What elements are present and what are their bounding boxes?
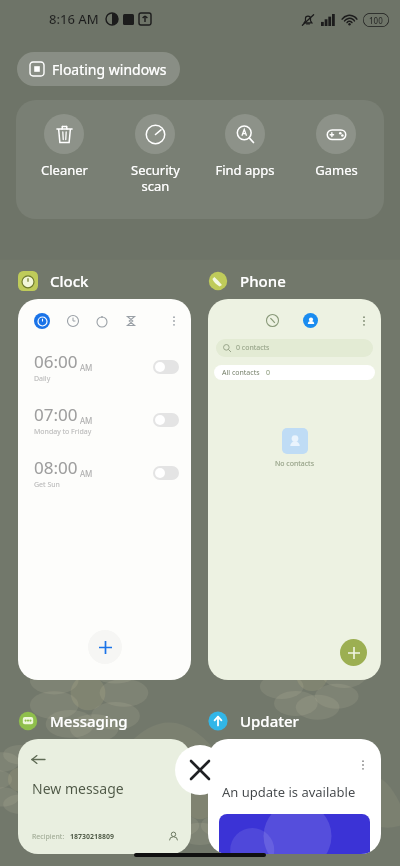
staticText: Daily xyxy=(34,374,51,384)
button[interactable]: Alarm toggle xyxy=(153,466,179,480)
button[interactable]: 0 contacts xyxy=(216,339,373,357)
button[interactable]: 06:00 xyxy=(18,299,191,680)
staticText: 8:16 AM xyxy=(49,10,99,28)
button[interactable]: Messaging xyxy=(18,711,128,731)
staticText: AM xyxy=(80,415,93,426)
staticText: 06:00 xyxy=(34,350,78,373)
button[interactable]: Find apps xyxy=(203,114,287,179)
button[interactable]: Clock xyxy=(18,271,89,291)
staticText: No contacts xyxy=(275,459,314,469)
staticText: AM xyxy=(80,468,93,479)
staticText: Clock xyxy=(50,271,89,291)
staticText: AM xyxy=(80,362,93,373)
staticText: Monday to Friday xyxy=(34,427,92,437)
staticText: 0 contacts xyxy=(236,343,270,353)
staticText: Updater xyxy=(240,711,299,731)
staticText: Get Sun xyxy=(34,480,60,490)
staticText: Recipient: xyxy=(32,832,65,842)
button[interactable]: Add alarm xyxy=(88,630,122,664)
staticText: Phone xyxy=(240,271,286,291)
button[interactable]: Alarm toggle xyxy=(153,413,179,427)
staticText: Find apps xyxy=(215,161,275,179)
button[interactable]: Close all xyxy=(175,745,225,795)
button[interactable]: Alarm toggle xyxy=(153,360,179,374)
staticText: Games xyxy=(315,161,358,179)
button[interactable]: Phone xyxy=(208,271,286,291)
staticText: 08:00 xyxy=(34,456,78,479)
button[interactable]: Games xyxy=(294,114,378,179)
staticText: 18730218809 xyxy=(70,832,115,842)
staticText: Messaging xyxy=(50,711,128,731)
button[interactable]: All contacts xyxy=(214,365,375,380)
button[interactable]: Floating windows xyxy=(17,52,180,86)
staticText: Security scan xyxy=(131,161,180,194)
staticText: An update is available xyxy=(222,783,356,801)
staticText: 07:00 xyxy=(34,403,78,426)
button[interactable]: An update is available xyxy=(208,739,381,854)
button[interactable]: Security scan xyxy=(113,114,197,194)
staticText: Cleaner xyxy=(41,161,88,179)
staticText: New message xyxy=(32,779,124,798)
button[interactable]: Updater xyxy=(208,711,299,731)
button[interactable]: Add contact xyxy=(340,639,367,666)
staticText: All contacts xyxy=(222,368,260,378)
staticText: Floating windows xyxy=(52,60,167,79)
staticText: 0 xyxy=(266,368,271,378)
button[interactable]: Cleaner xyxy=(22,114,106,179)
button[interactable]: New message xyxy=(18,739,191,854)
button[interactable]: 0 contacts xyxy=(208,299,381,680)
staticText: 100 xyxy=(369,15,383,26)
